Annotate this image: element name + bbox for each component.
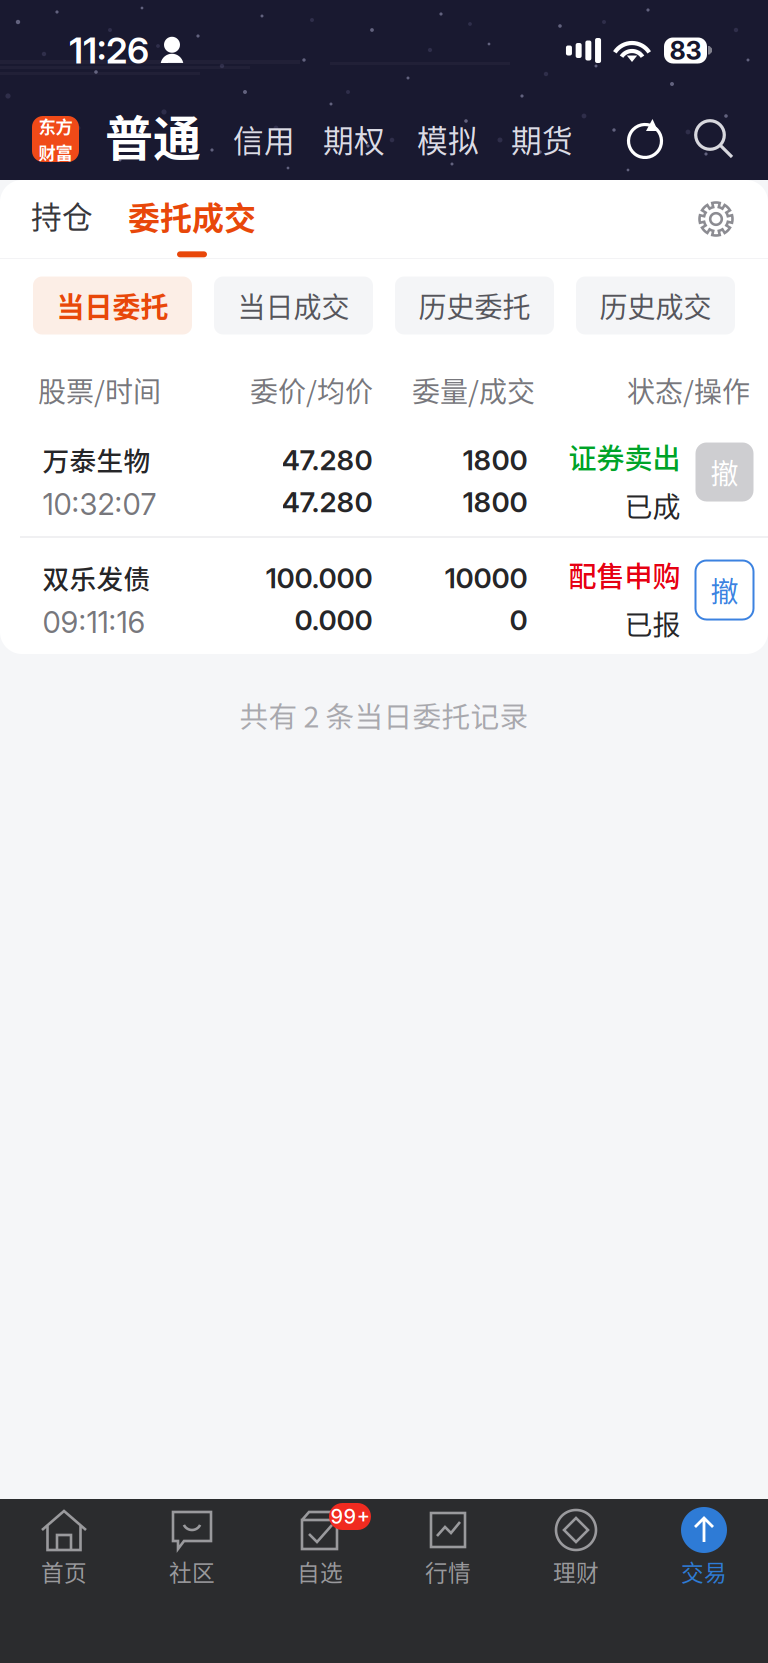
button[interactable]: 撤 (695, 560, 753, 637)
staticText: 09:11:16 (42, 605, 145, 640)
staticText: 社区 (169, 1555, 215, 1588)
button[interactable]: 持仓 (30, 180, 94, 258)
button[interactable]: 首页 (0, 1499, 128, 1663)
button[interactable]: 历史委托 (395, 276, 554, 334)
staticText: 万泰生物 (42, 440, 150, 478)
button[interactable]: 当日委托 (33, 276, 192, 334)
staticText: 期货 (511, 117, 573, 161)
button[interactable]: Settings (694, 197, 738, 241)
staticText: 已成 (624, 485, 680, 525)
staticText: 委价/均价 (250, 370, 373, 410)
staticText: 历史委托 (418, 285, 530, 326)
staticText: 双乐发债 (42, 558, 150, 596)
staticText: 0.000 (294, 603, 372, 637)
staticText: 共有 2 条当日委托记录 (239, 694, 528, 736)
staticText: 首页 (41, 1555, 87, 1588)
staticText: 状态/操作 (627, 370, 750, 410)
staticText: 证券卖出 (568, 436, 680, 477)
staticText: 0 (509, 603, 527, 637)
button[interactable]: East Money (32, 116, 79, 162)
staticText: 理财 (553, 1555, 599, 1588)
staticText: 持仓 (31, 193, 93, 237)
staticText: 1800 (462, 485, 527, 519)
button[interactable]: 期权 (323, 117, 385, 161)
staticText: 10:32:07 (42, 487, 156, 522)
staticText: 交易 (681, 1555, 727, 1588)
staticText: 当日成交 (237, 285, 349, 326)
staticText: 股票/时间 (38, 370, 161, 410)
staticText: 11:26 (69, 29, 149, 72)
staticText: 委托成交 (128, 193, 256, 239)
staticText: 当日委托 (56, 285, 168, 326)
button[interactable]: 委托成交 (128, 180, 256, 258)
staticText: 模拟 (417, 117, 479, 161)
button[interactable]: Search (694, 119, 733, 159)
staticText: 期权 (323, 117, 385, 161)
staticText: 行情 (425, 1555, 471, 1588)
button[interactable]: 普通 (105, 100, 201, 178)
staticText: 10000 (444, 561, 527, 595)
button[interactable]: 信用 (233, 117, 295, 161)
staticText: 历史成交 (599, 285, 711, 326)
button[interactable]: 期货 (511, 117, 573, 161)
staticText: 财富 (38, 139, 72, 165)
staticText: 配售申购 (568, 554, 680, 595)
staticText: 普通 (105, 100, 201, 170)
button[interactable]: 撤 (695, 442, 753, 519)
button[interactable]: 社区 (128, 1499, 256, 1663)
button[interactable]: 当日成交 (214, 276, 373, 334)
staticText: 100.000 (265, 561, 372, 595)
staticText: 1800 (462, 443, 527, 477)
button[interactable]: 模拟 (417, 117, 479, 161)
staticText: 47.280 (281, 443, 372, 477)
staticText: 99+ (330, 1504, 369, 1529)
staticText: 委量/成交 (412, 370, 535, 410)
button[interactable]: 行情 (384, 1499, 512, 1663)
staticText: 自选 (297, 1555, 343, 1588)
button[interactable]: 理财 (512, 1499, 640, 1663)
staticText: 东方 (38, 113, 72, 138)
staticText: 47.280 (281, 485, 372, 519)
button[interactable]: 历史成交 (576, 276, 735, 334)
staticText: 83 (669, 35, 701, 66)
button[interactable]: 交易 (640, 1499, 768, 1663)
staticText: 撤 (710, 452, 738, 492)
staticText: 撤 (710, 570, 738, 610)
staticText: 已报 (624, 603, 680, 643)
button[interactable]: 99+ (256, 1499, 384, 1663)
button[interactable]: Refresh (626, 119, 665, 159)
staticText: 信用 (233, 117, 295, 161)
